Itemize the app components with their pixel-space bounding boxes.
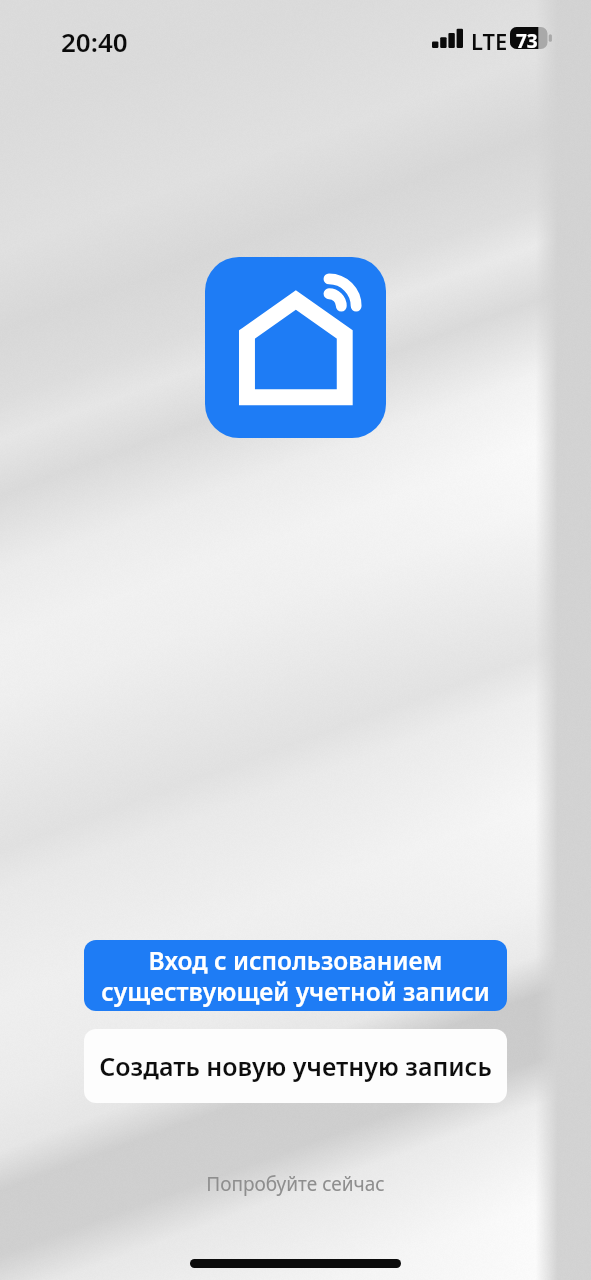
staticText: Вход с использованием существующей учетн… xyxy=(101,944,490,1008)
staticText: 73 xyxy=(516,28,538,50)
button[interactable]: Создать новую учетную запись xyxy=(84,1029,507,1103)
staticText: 20:40 xyxy=(61,24,128,59)
staticText: Создать новую учетную запись xyxy=(99,1049,492,1083)
staticText: LTE xyxy=(471,26,508,56)
other: Smart Life xyxy=(205,257,386,438)
button[interactable]: Вход с использованием существующей учетн… xyxy=(84,940,507,1011)
button[interactable]: Попробуйте сейчас xyxy=(192,1163,399,1205)
